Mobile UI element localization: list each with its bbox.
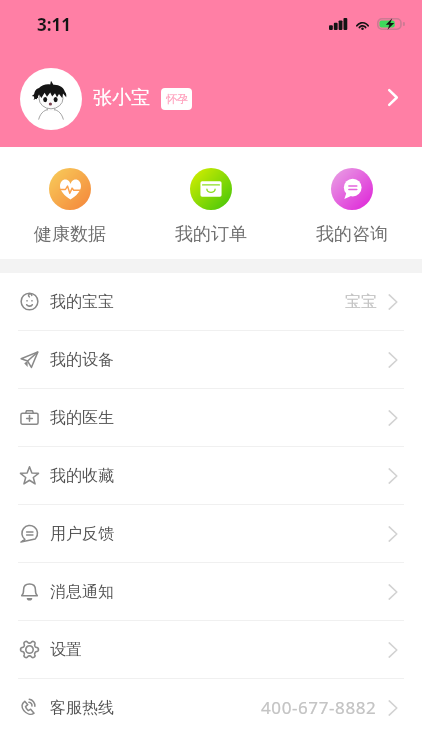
staticText: 张小宝: [93, 86, 150, 110]
button[interactable]: 我的咨询: [281, 147, 422, 246]
staticText: 怀孕: [166, 92, 188, 106]
staticText: 我的宝宝: [50, 292, 114, 312]
button[interactable]: 我的设备: [0, 331, 422, 388]
button[interactable]: 我的宝宝: [0, 273, 422, 330]
button[interactable]: 张小宝: [0, 48, 422, 147]
staticText: 健康数据: [34, 223, 106, 246]
button[interactable]: 我的订单: [140, 147, 281, 246]
button[interactable]: 消息通知: [0, 563, 422, 620]
staticText: 我的收藏: [50, 466, 114, 486]
staticText: 用户反馈: [50, 524, 114, 544]
staticText: 我的设备: [50, 350, 114, 370]
button[interactable]: 我的医生: [0, 389, 422, 446]
staticText: 我的咨询: [316, 223, 388, 246]
staticText: 我的医生: [50, 408, 114, 428]
button[interactable]: 健康数据: [0, 147, 140, 246]
button[interactable]: 我的收藏: [0, 447, 422, 504]
staticText: 宝宝: [345, 292, 377, 312]
staticText: 设置: [50, 640, 82, 660]
button[interactable]: 用户反馈: [0, 505, 422, 562]
staticText: 我的订单: [175, 223, 247, 246]
staticText: 消息通知: [50, 582, 114, 602]
button[interactable]: 客服热线: [0, 679, 422, 736]
button[interactable]: 设置: [0, 621, 422, 678]
staticText: 400-677-8882: [261, 696, 377, 719]
staticText: 客服热线: [50, 698, 114, 718]
staticText: 3:11: [37, 13, 71, 36]
